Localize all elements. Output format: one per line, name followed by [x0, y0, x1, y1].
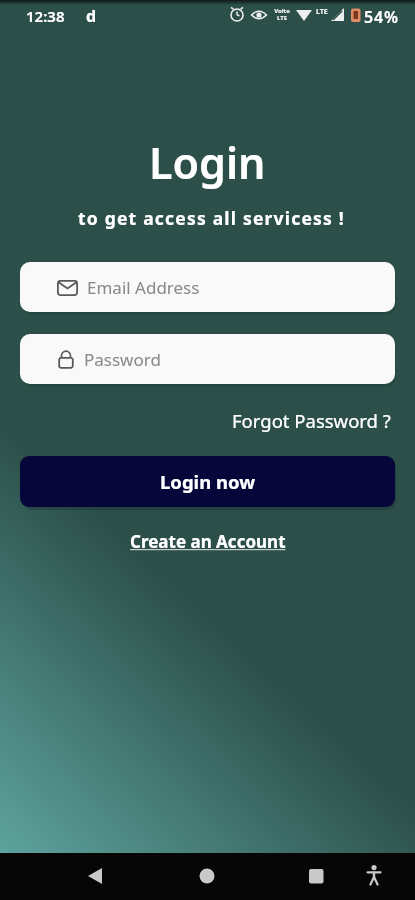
button[interactable]	[193, 862, 221, 890]
staticText: to get access all servicess !	[78, 206, 345, 230]
staticText: Login now	[160, 469, 256, 494]
button[interactable]	[302, 862, 330, 890]
staticText: 12:38	[26, 6, 65, 26]
button[interactable]: Email Address	[20, 262, 395, 312]
staticText: d	[86, 5, 97, 27]
button[interactable]	[360, 862, 388, 890]
button[interactable]	[81, 862, 109, 890]
staticText: Volte LTE	[274, 7, 290, 22]
staticText: 54%	[364, 6, 399, 28]
staticText: Password	[84, 348, 161, 371]
button[interactable]: Create an Account	[130, 530, 286, 553]
staticText: Email Address	[87, 276, 200, 299]
button[interactable]: Forgot Password ?	[232, 408, 391, 433]
staticText: Login	[149, 133, 266, 192]
button[interactable]: Password	[20, 334, 395, 384]
staticText: LTE	[316, 7, 328, 17]
button[interactable]: Login now	[20, 456, 395, 507]
